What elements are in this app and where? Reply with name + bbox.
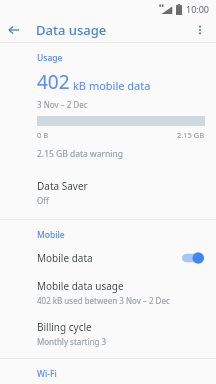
button[interactable]: Back (0, 18, 28, 42)
staticText: Wi-Fi (37, 368, 57, 380)
staticText: Usage (37, 52, 63, 64)
staticText: Data usage (36, 21, 107, 39)
staticText: Mobile data (37, 251, 93, 265)
button[interactable]: Mobile data usage (0, 272, 216, 313)
staticText: 402 (37, 69, 70, 95)
button[interactable]: Data Saver (0, 172, 216, 213)
button[interactable]: Mobile data (0, 244, 216, 272)
staticText: 2.15 GB data warning (37, 148, 123, 160)
staticText: Billing cycle (37, 320, 92, 334)
staticText: Data Saver (37, 179, 88, 193)
staticText: 0 B (37, 130, 49, 140)
staticText: 3 Nov – 2 Dec (37, 99, 88, 110)
staticText: Mobile (37, 229, 65, 241)
staticText: 2.15 GB (177, 130, 205, 140)
button[interactable]: More options (188, 18, 212, 42)
button[interactable]: Billing cycle (0, 313, 216, 354)
staticText: kB mobile data (73, 78, 151, 93)
staticText: Monthly starting 3 (37, 336, 107, 347)
staticText: Off (37, 195, 49, 206)
staticText: 402 kB used between 3 Nov – 2 Dec (37, 295, 170, 306)
staticText: 10:00 (186, 3, 210, 15)
staticText: Mobile data usage (37, 279, 124, 293)
